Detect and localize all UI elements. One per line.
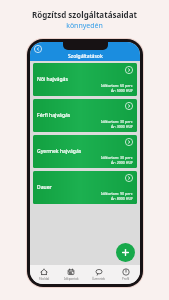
staticText: Ár: 5000 HUF bbox=[111, 88, 133, 93]
staticText: Üzenetek bbox=[92, 277, 106, 281]
staticText: Időtartam: 90 perc bbox=[101, 191, 133, 196]
staticText: könnyedén bbox=[66, 21, 103, 31]
staticText: Időtartam: 30 perc bbox=[101, 119, 133, 124]
button[interactable]: Vissza bbox=[32, 43, 43, 54]
staticText: Időtartam: 30 perc bbox=[101, 155, 133, 160]
staticText: Férfi hajvágás bbox=[37, 112, 71, 119]
button[interactable]: Üzenetek bbox=[86, 265, 112, 284]
button[interactable]: Gyermek hajvágás bbox=[33, 135, 137, 168]
staticText: Gyermek hajvágás bbox=[37, 148, 82, 155]
staticText: Profil bbox=[122, 277, 130, 281]
button[interactable]: Időpontok bbox=[58, 265, 84, 284]
staticText: Női hajvágás bbox=[37, 76, 68, 83]
button[interactable]: Hozzáadás bbox=[116, 243, 135, 262]
staticText: Ár: 2000 HUF bbox=[111, 160, 133, 165]
button[interactable]: Dauer bbox=[33, 171, 137, 204]
staticText: Időpontok bbox=[64, 277, 79, 281]
button[interactable]: Férfi hajvágás bbox=[33, 99, 137, 132]
button[interactable]: Női hajvágás bbox=[33, 63, 137, 96]
staticText: Szolgáltatások bbox=[68, 53, 103, 60]
staticText: Dauer bbox=[37, 184, 52, 191]
staticText: Rögzítsd szolgáltatásaidat bbox=[32, 9, 137, 20]
button[interactable]: Profil bbox=[113, 265, 139, 284]
button[interactable]: Főoldal bbox=[31, 265, 57, 284]
staticText: Ár: 8000 HUF bbox=[111, 196, 133, 201]
staticText: Időtartam: 60 perc bbox=[101, 83, 133, 88]
staticText: Főoldal bbox=[39, 277, 50, 281]
staticText: Ár: 3000 HUF bbox=[111, 124, 133, 129]
